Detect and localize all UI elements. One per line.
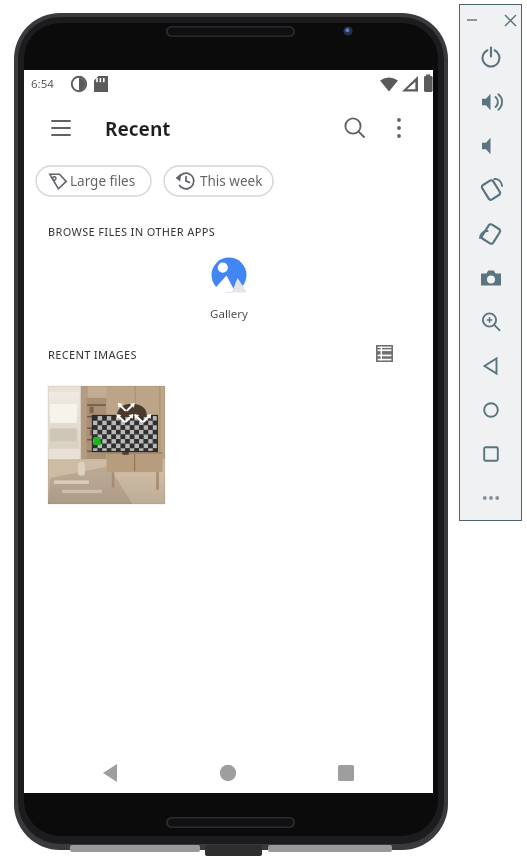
button[interactable]: Gallery bbox=[196, 252, 262, 322]
button[interactable]: Overview bbox=[459, 432, 522, 476]
button[interactable]: Minimize bbox=[461, 9, 483, 31]
button[interactable]: Zoom bbox=[459, 300, 522, 344]
button[interactable]: Take screenshot bbox=[459, 256, 522, 300]
staticText: RECENT IMAGES bbox=[48, 347, 137, 362]
button[interactable]: Rotate right bbox=[459, 212, 522, 256]
staticText: Gallery bbox=[210, 306, 248, 322]
button[interactable]: Rotate left bbox=[459, 168, 522, 212]
button[interactable]: Home bbox=[206, 752, 250, 794]
button[interactable]: Power bbox=[459, 36, 522, 80]
button[interactable]: Back bbox=[459, 344, 522, 388]
staticText: Recent bbox=[105, 116, 171, 142]
button[interactable]: Volume down bbox=[459, 124, 522, 168]
button[interactable]: Open navigation drawer bbox=[40, 110, 80, 150]
button[interactable]: Back bbox=[88, 752, 132, 794]
button[interactable]: Volume up bbox=[459, 80, 522, 124]
button[interactable]: More options bbox=[379, 110, 417, 150]
button[interactable]: Home bbox=[459, 388, 522, 432]
staticText: BROWSE FILES IN OTHER APPS bbox=[48, 224, 216, 239]
button[interactable]: Switch to list view bbox=[368, 337, 402, 371]
button[interactable]: Recent apps bbox=[324, 752, 368, 794]
staticText: 6:54 bbox=[31, 76, 54, 92]
button[interactable]: Recent image bbox=[48, 386, 165, 504]
button[interactable]: More bbox=[459, 476, 522, 520]
staticText: Large files bbox=[70, 172, 136, 190]
button[interactable]: Large files bbox=[36, 166, 139, 196]
button[interactable]: Search bbox=[333, 110, 373, 150]
button[interactable]: Close bbox=[499, 9, 521, 31]
button[interactable]: This week bbox=[164, 166, 273, 196]
staticText: This week bbox=[200, 172, 263, 190]
